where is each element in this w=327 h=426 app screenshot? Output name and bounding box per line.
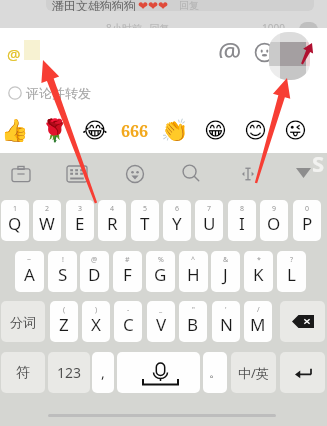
button[interactable]: Tools	[12, 165, 30, 183]
staticText: Z	[59, 313, 69, 336]
staticText: 123	[57, 363, 82, 382]
staticText: S	[312, 148, 325, 178]
staticText: L	[287, 263, 296, 286]
staticText: P	[302, 212, 313, 235]
button[interactable]: 123	[48, 352, 90, 393]
staticText: 🌹	[41, 118, 69, 144]
button[interactable]: ^	[179, 251, 208, 292]
button[interactable]: )	[82, 301, 110, 342]
button[interactable]: emoji	[200, 118, 230, 144]
button[interactable]: !	[48, 251, 77, 292]
staticText: T	[140, 212, 150, 235]
staticText: X	[91, 313, 101, 336]
button[interactable]: 7	[195, 200, 223, 241]
staticText: 666	[121, 120, 149, 142]
staticText: H	[187, 263, 200, 286]
staticText: Y	[172, 212, 182, 235]
staticText: &	[223, 255, 229, 265]
staticText: W	[39, 212, 55, 235]
button[interactable]: &	[211, 251, 240, 292]
staticText: 😁	[204, 118, 227, 144]
button[interactable]: key	[280, 352, 325, 393]
button[interactable]: Search	[182, 164, 200, 182]
button[interactable]: /	[244, 301, 272, 342]
button[interactable]: 4	[98, 200, 126, 241]
staticText: V	[156, 313, 167, 336]
staticText: 9	[272, 204, 277, 214]
staticText: R	[107, 212, 118, 235]
button[interactable]: 9	[260, 200, 288, 241]
button[interactable]: 符	[1, 352, 45, 393]
staticText: 😊	[244, 118, 267, 144]
button[interactable]: 中/英	[231, 352, 276, 393]
staticText: 8	[240, 204, 245, 214]
button[interactable]: ~	[15, 251, 44, 292]
button[interactable]: 6	[163, 200, 191, 241]
staticText: 👏	[161, 118, 189, 144]
staticText: M	[250, 313, 266, 336]
button[interactable]: 0	[293, 200, 321, 241]
staticText: C	[123, 313, 134, 336]
staticText: N	[220, 313, 233, 336]
button[interactable]: emoji	[160, 118, 190, 144]
button[interactable]: %	[146, 251, 175, 292]
staticText: ~	[27, 255, 32, 265]
staticText: 1000	[262, 21, 285, 35]
button[interactable]: Move cursor	[238, 165, 258, 183]
staticText: S	[58, 263, 68, 286]
button[interactable]: 5	[131, 200, 159, 241]
button[interactable]: 。	[203, 352, 227, 393]
button[interactable]: Emoji panel	[126, 165, 144, 183]
button[interactable]: 评论并转发	[8, 85, 91, 101]
staticText: 😜	[284, 118, 307, 144]
button[interactable]: 8	[228, 200, 256, 241]
button[interactable]: emoji	[240, 118, 270, 144]
button[interactable]: Mention	[217, 33, 242, 58]
button[interactable]: 2	[33, 200, 61, 241]
staticText: A	[24, 263, 35, 286]
button[interactable]: Send	[264, 30, 310, 82]
button[interactable]: key	[280, 301, 325, 342]
button[interactable]: "	[179, 301, 207, 342]
staticText: 。	[209, 365, 221, 380]
button[interactable]: '	[212, 301, 240, 342]
button[interactable]: ?	[277, 251, 306, 292]
button[interactable]: emoji	[80, 118, 110, 144]
staticText: @	[218, 33, 242, 58]
staticText: K	[253, 263, 264, 286]
button[interactable]: 1	[1, 200, 29, 241]
button[interactable]: emoji	[0, 118, 30, 144]
staticText: 评论并转发	[26, 85, 91, 101]
button[interactable]: #	[113, 251, 142, 292]
button[interactable]: _	[147, 301, 175, 342]
staticText: B	[187, 313, 199, 336]
button[interactable]: *	[244, 251, 273, 292]
staticText: Q	[8, 212, 22, 235]
button[interactable]: 分词	[1, 301, 45, 342]
button[interactable]: Emoji	[255, 43, 274, 62]
staticText: E	[75, 212, 85, 235]
button[interactable]: emoji	[120, 118, 150, 144]
staticText: @	[91, 255, 98, 265]
staticText: 4	[110, 204, 115, 214]
staticText: "	[192, 305, 195, 315]
staticText: F	[123, 263, 132, 286]
button[interactable]: key	[117, 352, 200, 393]
button[interactable]: Hide keyboard	[296, 168, 311, 178]
button[interactable]: ,	[92, 352, 114, 393]
button[interactable]: Keyboard	[67, 166, 87, 182]
button[interactable]: emoji	[40, 118, 70, 144]
button[interactable]: (	[50, 301, 78, 342]
staticText: G	[154, 263, 167, 286]
staticText: 分词	[10, 314, 36, 330]
staticText: 7	[207, 204, 212, 214]
button[interactable]: emoji	[280, 118, 310, 144]
button[interactable]: 3	[66, 200, 94, 241]
button[interactable]: @	[80, 251, 109, 292]
staticText: 符	[16, 364, 30, 382]
staticText: )	[95, 305, 98, 315]
staticText: 3	[78, 204, 83, 214]
button[interactable]: -	[114, 301, 142, 342]
staticText: 1	[13, 204, 18, 214]
staticText: /	[257, 305, 260, 315]
